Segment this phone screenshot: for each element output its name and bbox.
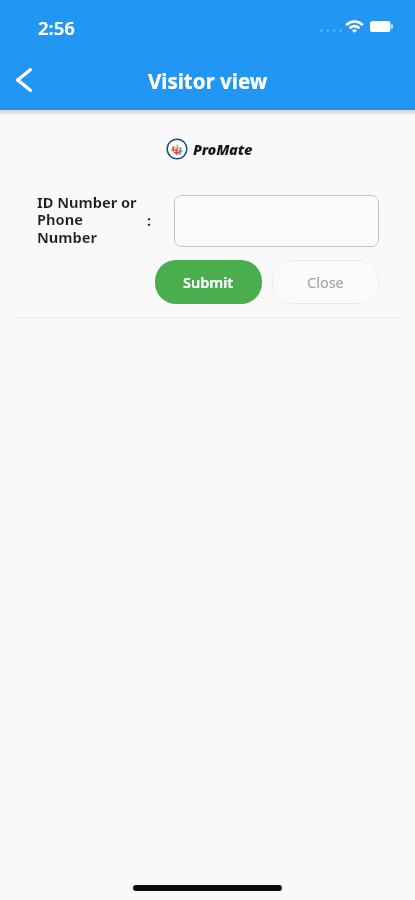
- staticText: ProMate: [193, 139, 253, 159]
- button[interactable]: Close: [272, 260, 379, 304]
- staticText: ID Number or Phone Number: [37, 192, 141, 247]
- staticText: Visitor view: [148, 67, 268, 95]
- button[interactable]: [174, 195, 379, 247]
- staticText: Submit: [183, 272, 234, 292]
- staticText: 2:56: [38, 15, 75, 40]
- button[interactable]: Back: [3, 59, 45, 101]
- button[interactable]: Submit: [155, 260, 262, 304]
- staticText: :: [147, 210, 152, 230]
- staticText: Close: [307, 272, 344, 292]
